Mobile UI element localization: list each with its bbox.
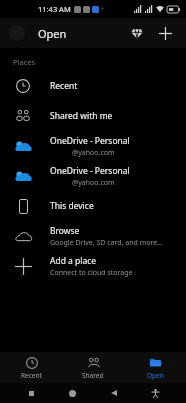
staticText: + xyxy=(101,5,105,13)
staticText: Recent xyxy=(50,80,78,92)
staticText: Connect to cloud storage xyxy=(50,268,133,278)
staticText: Add a place xyxy=(50,255,97,267)
button[interactable]: Recents xyxy=(20,383,42,403)
button[interactable]: Shared with me xyxy=(0,101,186,131)
button[interactable]: Browse xyxy=(0,221,186,251)
button[interactable]: Open xyxy=(124,353,186,383)
staticText: This device xyxy=(50,200,94,212)
button[interactable]: OneDrive - Personal xyxy=(0,131,186,161)
staticText: OneDrive - Personal xyxy=(50,165,130,177)
staticText: 11:43 AM xyxy=(38,4,71,14)
staticText: Places xyxy=(13,57,36,67)
staticText: Recent xyxy=(21,371,42,380)
staticText: Google Drive, SD card, and more... xyxy=(50,238,163,248)
button[interactable]: Accessibility xyxy=(144,383,166,403)
button[interactable]: Account xyxy=(9,25,25,41)
staticText: Shared with me xyxy=(50,110,113,122)
button[interactable]: Recent xyxy=(0,353,62,383)
button[interactable]: OneDrive - Personal xyxy=(0,161,186,191)
button[interactable]: Add a place xyxy=(0,251,186,281)
staticText: @yahoo.com xyxy=(72,148,115,158)
button[interactable]: This device xyxy=(0,191,186,221)
button[interactable]: Premium xyxy=(125,21,149,45)
staticText: Browse xyxy=(50,225,80,237)
button[interactable]: Recent xyxy=(0,71,186,101)
button[interactable]: New xyxy=(153,21,177,45)
staticText: Shared xyxy=(82,371,104,380)
button[interactable]: Home xyxy=(61,383,83,403)
staticText: OneDrive - Personal xyxy=(50,135,130,147)
button[interactable]: Shared xyxy=(62,353,124,383)
staticText: Open xyxy=(38,26,67,41)
staticText: @yahoo.com xyxy=(72,178,115,188)
staticText: Open xyxy=(147,371,164,380)
button[interactable]: Back xyxy=(103,383,125,403)
